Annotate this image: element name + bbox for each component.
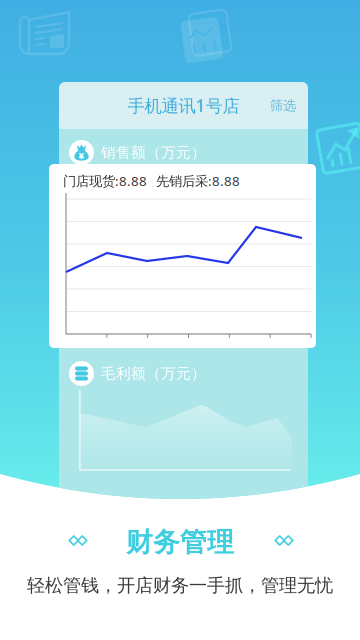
staticText: 毛利额（万元）	[101, 364, 206, 382]
staticText: 销售额（万元）	[101, 143, 206, 161]
staticText: 财务管理	[126, 526, 234, 559]
staticText: 轻松管钱，开店财务一手抓，管理无忧	[27, 574, 333, 597]
button[interactable]: 筛选	[270, 97, 308, 114]
staticText: 筛选	[270, 97, 296, 114]
staticText: 门店现货:8.88 先销后采:8.88	[63, 172, 240, 190]
staticText: 手机通讯1号店	[127, 94, 239, 117]
